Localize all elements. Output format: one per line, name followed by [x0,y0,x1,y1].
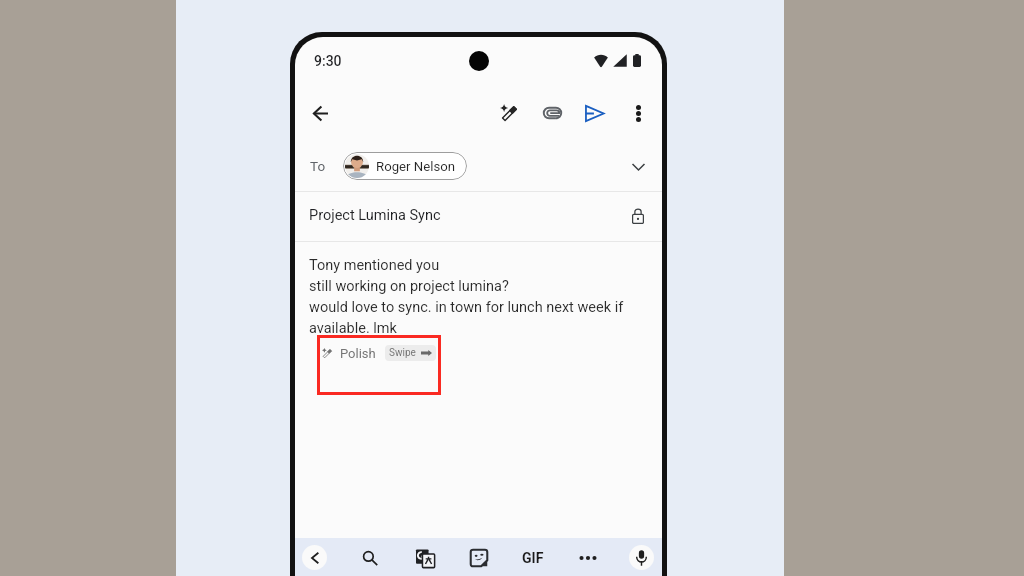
button[interactable]: Translate [410,543,440,573]
button[interactable]: GIF [517,544,549,572]
button[interactable]: Stickers [464,543,494,573]
button[interactable]: More options [620,95,656,131]
staticText: To [310,158,326,174]
button[interactable]: Expand recipients [621,150,655,184]
button[interactable]: Back [300,93,340,133]
button[interactable]: Voice input [629,545,654,570]
staticText: Polish [340,346,376,361]
button[interactable]: Attach file [534,95,570,131]
button[interactable]: Search [355,543,385,573]
staticText: Roger Nelson [376,159,456,174]
button[interactable]: Polish with AI [491,95,527,131]
staticText: Project Lumina Sync [309,207,441,224]
staticText: Swipe [389,347,416,359]
staticText: 9:30 [314,53,342,69]
button[interactable]: Roger Nelson [343,152,467,180]
button[interactable]: Collapse toolbar [302,545,327,570]
button[interactable]: More [573,543,603,573]
button[interactable]: Send [576,95,612,131]
button[interactable]: Polish [322,342,436,364]
staticText: Tony mentioned you still working on proj… [309,253,624,337]
staticText: GIF [522,550,544,566]
button[interactable]: Confidential mode [623,201,653,231]
